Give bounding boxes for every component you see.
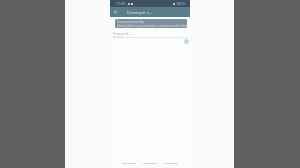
staticText: 100% xyxy=(176,1,186,6)
staticText: Developer o… xyxy=(127,10,153,15)
staticText: 11:05 xyxy=(116,1,126,6)
button[interactable]: Navigate up xyxy=(112,8,120,16)
staticText: /data/data/com.example.companionx/cache/… xyxy=(117,23,187,28)
button[interactable]: Password… xyxy=(112,30,188,38)
button[interactable]: CompanionSetUp xyxy=(115,19,187,28)
staticText: •••••••• xyxy=(113,34,124,39)
staticText: CompanionSetUp xyxy=(117,19,145,23)
button[interactable]: Selection handle xyxy=(184,39,189,44)
staticText: Password… xyxy=(113,31,132,36)
